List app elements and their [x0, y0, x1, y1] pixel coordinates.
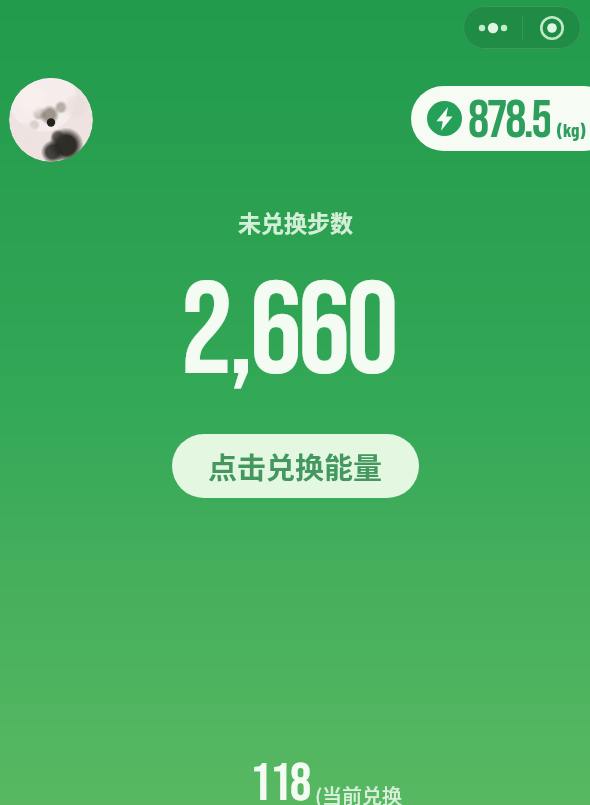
staticText: 点击兑换能量	[208, 445, 383, 487]
button[interactable]: Menu	[463, 6, 581, 49]
staticText: 未兑换步数	[238, 205, 353, 238]
staticText: (kg)	[557, 118, 586, 141]
staticText: 2,660	[180, 255, 395, 412]
button[interactable]: Profile avatar	[9, 78, 93, 162]
button[interactable]: 878.5	[427, 86, 590, 151]
staticText: (当前兑换	[315, 781, 403, 805]
staticText: 118	[250, 752, 310, 805]
staticText: 878.5	[468, 89, 550, 151]
button[interactable]: 点击兑换能量	[172, 434, 419, 498]
